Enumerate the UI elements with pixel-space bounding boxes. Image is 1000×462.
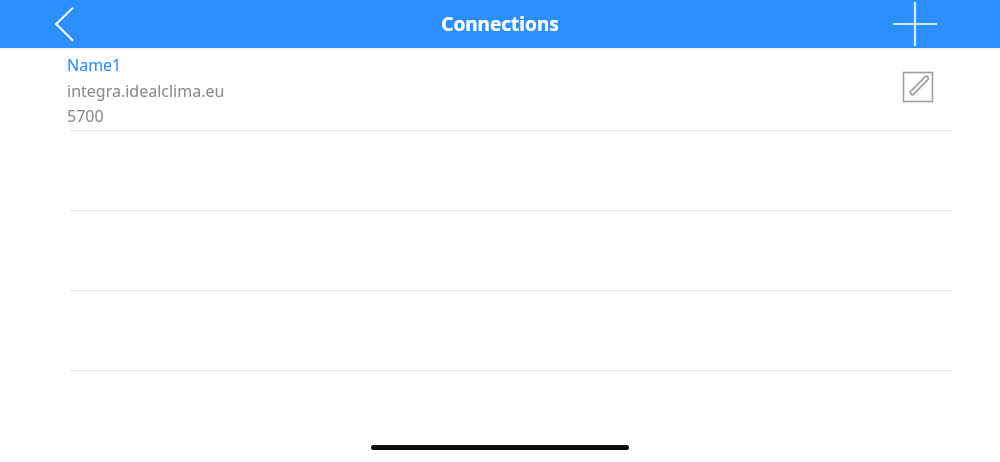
staticText: Connections	[0, 11, 1000, 37]
button[interactable]: Name1	[0, 49, 1000, 130]
staticText: 5700	[67, 105, 104, 127]
staticText: Name1	[67, 54, 122, 76]
button[interactable]: Back	[40, 0, 90, 48]
button[interactable]: Add connection	[888, 0, 942, 48]
staticText: integra.idealclima.eu	[67, 80, 225, 102]
button[interactable]: Edit	[896, 65, 940, 109]
